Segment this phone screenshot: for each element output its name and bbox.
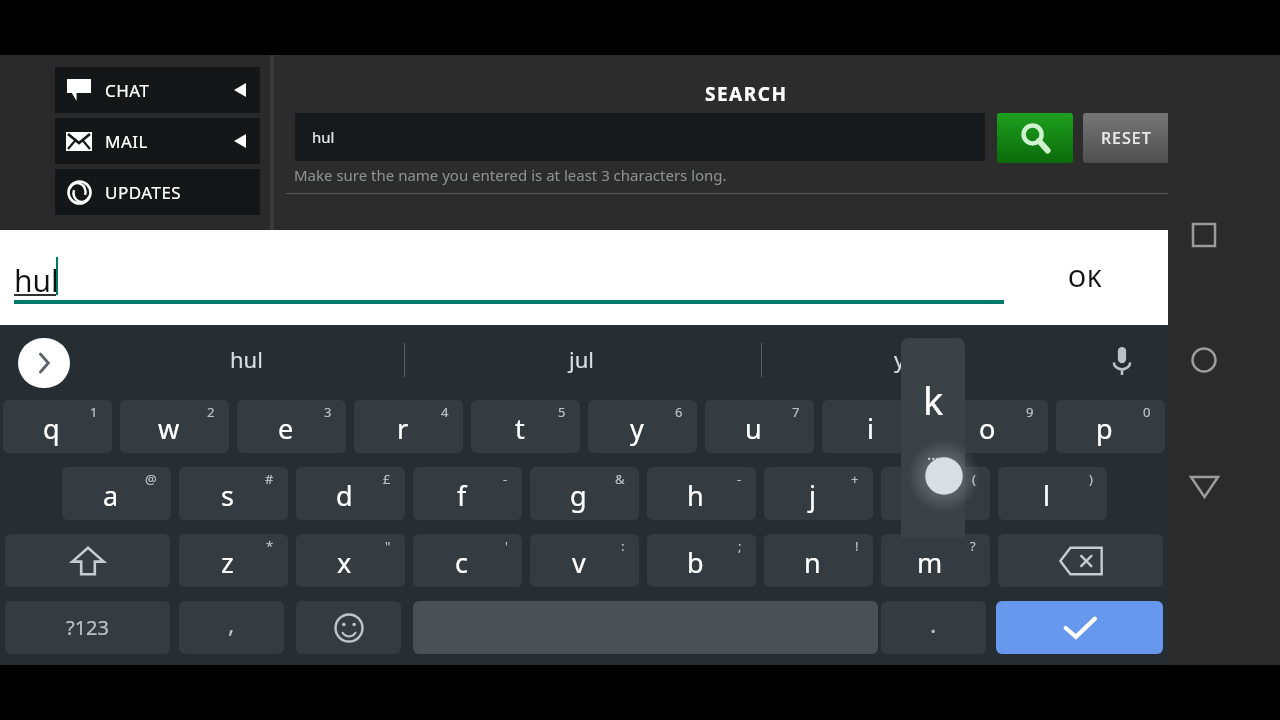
staticText: 0	[1143, 403, 1151, 421]
staticText: c	[455, 544, 468, 581]
staticText: OK	[1068, 262, 1103, 293]
button[interactable]: Shift	[5, 534, 170, 587]
button[interactable]: ,	[179, 601, 284, 654]
staticText: o	[979, 410, 996, 447]
button[interactable]: p	[1056, 400, 1165, 453]
button[interactable]: x	[296, 534, 405, 587]
staticText: -	[503, 470, 508, 488]
staticText: v	[572, 544, 586, 581]
staticText: i	[867, 410, 874, 447]
button[interactable]: a	[62, 467, 171, 520]
button[interactable]: s	[179, 467, 288, 520]
staticText: t	[515, 410, 525, 447]
button[interactable]: k	[881, 467, 990, 520]
staticText: p	[1096, 410, 1113, 447]
button[interactable]: RESET	[1083, 113, 1209, 163]
button[interactable]: u	[705, 400, 814, 453]
staticText: k	[923, 374, 944, 426]
staticText: #	[265, 470, 274, 488]
button[interactable]: c	[413, 534, 522, 587]
button[interactable]: MAIL	[55, 118, 260, 164]
staticText: 7	[792, 403, 800, 421]
button[interactable]: Backspace	[998, 534, 1163, 587]
button[interactable]: Search	[997, 113, 1073, 163]
staticText: '	[505, 537, 508, 555]
button[interactable]: Recents	[1186, 217, 1222, 253]
button[interactable]: Home	[1186, 342, 1222, 378]
button[interactable]: Voice input	[1098, 337, 1146, 385]
staticText: &	[615, 470, 625, 488]
staticText: e	[278, 410, 294, 447]
staticText: y	[894, 344, 906, 374]
staticText: z	[221, 544, 234, 581]
button[interactable]: UPDATES	[55, 169, 260, 215]
staticText: s	[221, 477, 234, 514]
staticText: l	[1043, 477, 1050, 514]
button[interactable]: f	[413, 467, 522, 520]
button[interactable]: y	[840, 325, 960, 393]
button[interactable]: b	[647, 534, 756, 587]
staticText: 5	[558, 403, 566, 421]
button[interactable]: n	[764, 534, 873, 587]
staticText: £	[383, 470, 391, 488]
button[interactable]: OK	[1040, 252, 1130, 302]
staticText: !	[855, 537, 859, 555]
button[interactable]: m	[881, 534, 990, 587]
button[interactable]: Emoji	[296, 601, 401, 654]
button[interactable]: g	[530, 467, 639, 520]
button[interactable]: CHAT	[55, 67, 260, 113]
button[interactable]: q	[3, 400, 112, 453]
button[interactable]: l	[998, 467, 1107, 520]
button[interactable]: o	[939, 400, 1048, 453]
button[interactable]: i	[822, 400, 931, 453]
staticText: ,	[228, 607, 235, 640]
staticText: MAIL	[105, 130, 148, 153]
button[interactable]: e	[237, 400, 346, 453]
staticText: q	[43, 410, 60, 447]
button[interactable]: .	[881, 601, 986, 654]
staticText: w	[158, 410, 180, 447]
staticText: hul	[312, 127, 335, 147]
staticText: "	[385, 537, 391, 555]
staticText: r	[397, 410, 409, 447]
staticText: n	[804, 544, 821, 581]
staticText: +	[851, 470, 859, 488]
staticText: ;	[738, 537, 742, 555]
button[interactable]: z	[179, 534, 288, 587]
staticText: a	[103, 477, 119, 514]
button[interactable]: Enter	[996, 601, 1163, 654]
staticText: jul	[569, 344, 594, 374]
staticText: *	[266, 537, 274, 555]
staticText: hul	[14, 260, 59, 301]
staticText: 6	[675, 403, 683, 421]
button[interactable]: jul	[521, 325, 641, 393]
button[interactable]: t	[471, 400, 580, 453]
staticText: SEARCH	[705, 81, 788, 107]
button[interactable]: Back	[1186, 468, 1222, 504]
button[interactable]: ?123	[5, 601, 170, 654]
staticText: UPDATES	[105, 181, 182, 204]
staticText: (	[972, 470, 976, 488]
staticText: CHAT	[105, 79, 150, 102]
staticText: 2	[207, 403, 215, 421]
button[interactable]: w	[120, 400, 229, 453]
staticText: d	[336, 477, 353, 514]
staticText: 4	[441, 403, 449, 421]
button[interactable]: r	[354, 400, 463, 453]
button[interactable]: More suggestions	[18, 338, 70, 388]
button[interactable]: hul	[186, 325, 306, 393]
staticText: Make sure the name you entered is at lea…	[294, 165, 727, 185]
button[interactable]: hul	[295, 113, 985, 161]
button[interactable]: y	[588, 400, 697, 453]
staticText: ?123	[66, 614, 109, 641]
button[interactable]: h	[647, 467, 756, 520]
staticText: @	[145, 470, 157, 488]
button[interactable]: d	[296, 467, 405, 520]
staticText: m	[917, 544, 943, 581]
staticText: x	[337, 544, 352, 581]
staticText: 3	[324, 403, 332, 421]
button[interactable]: v	[530, 534, 639, 587]
button[interactable]: j	[764, 467, 873, 520]
